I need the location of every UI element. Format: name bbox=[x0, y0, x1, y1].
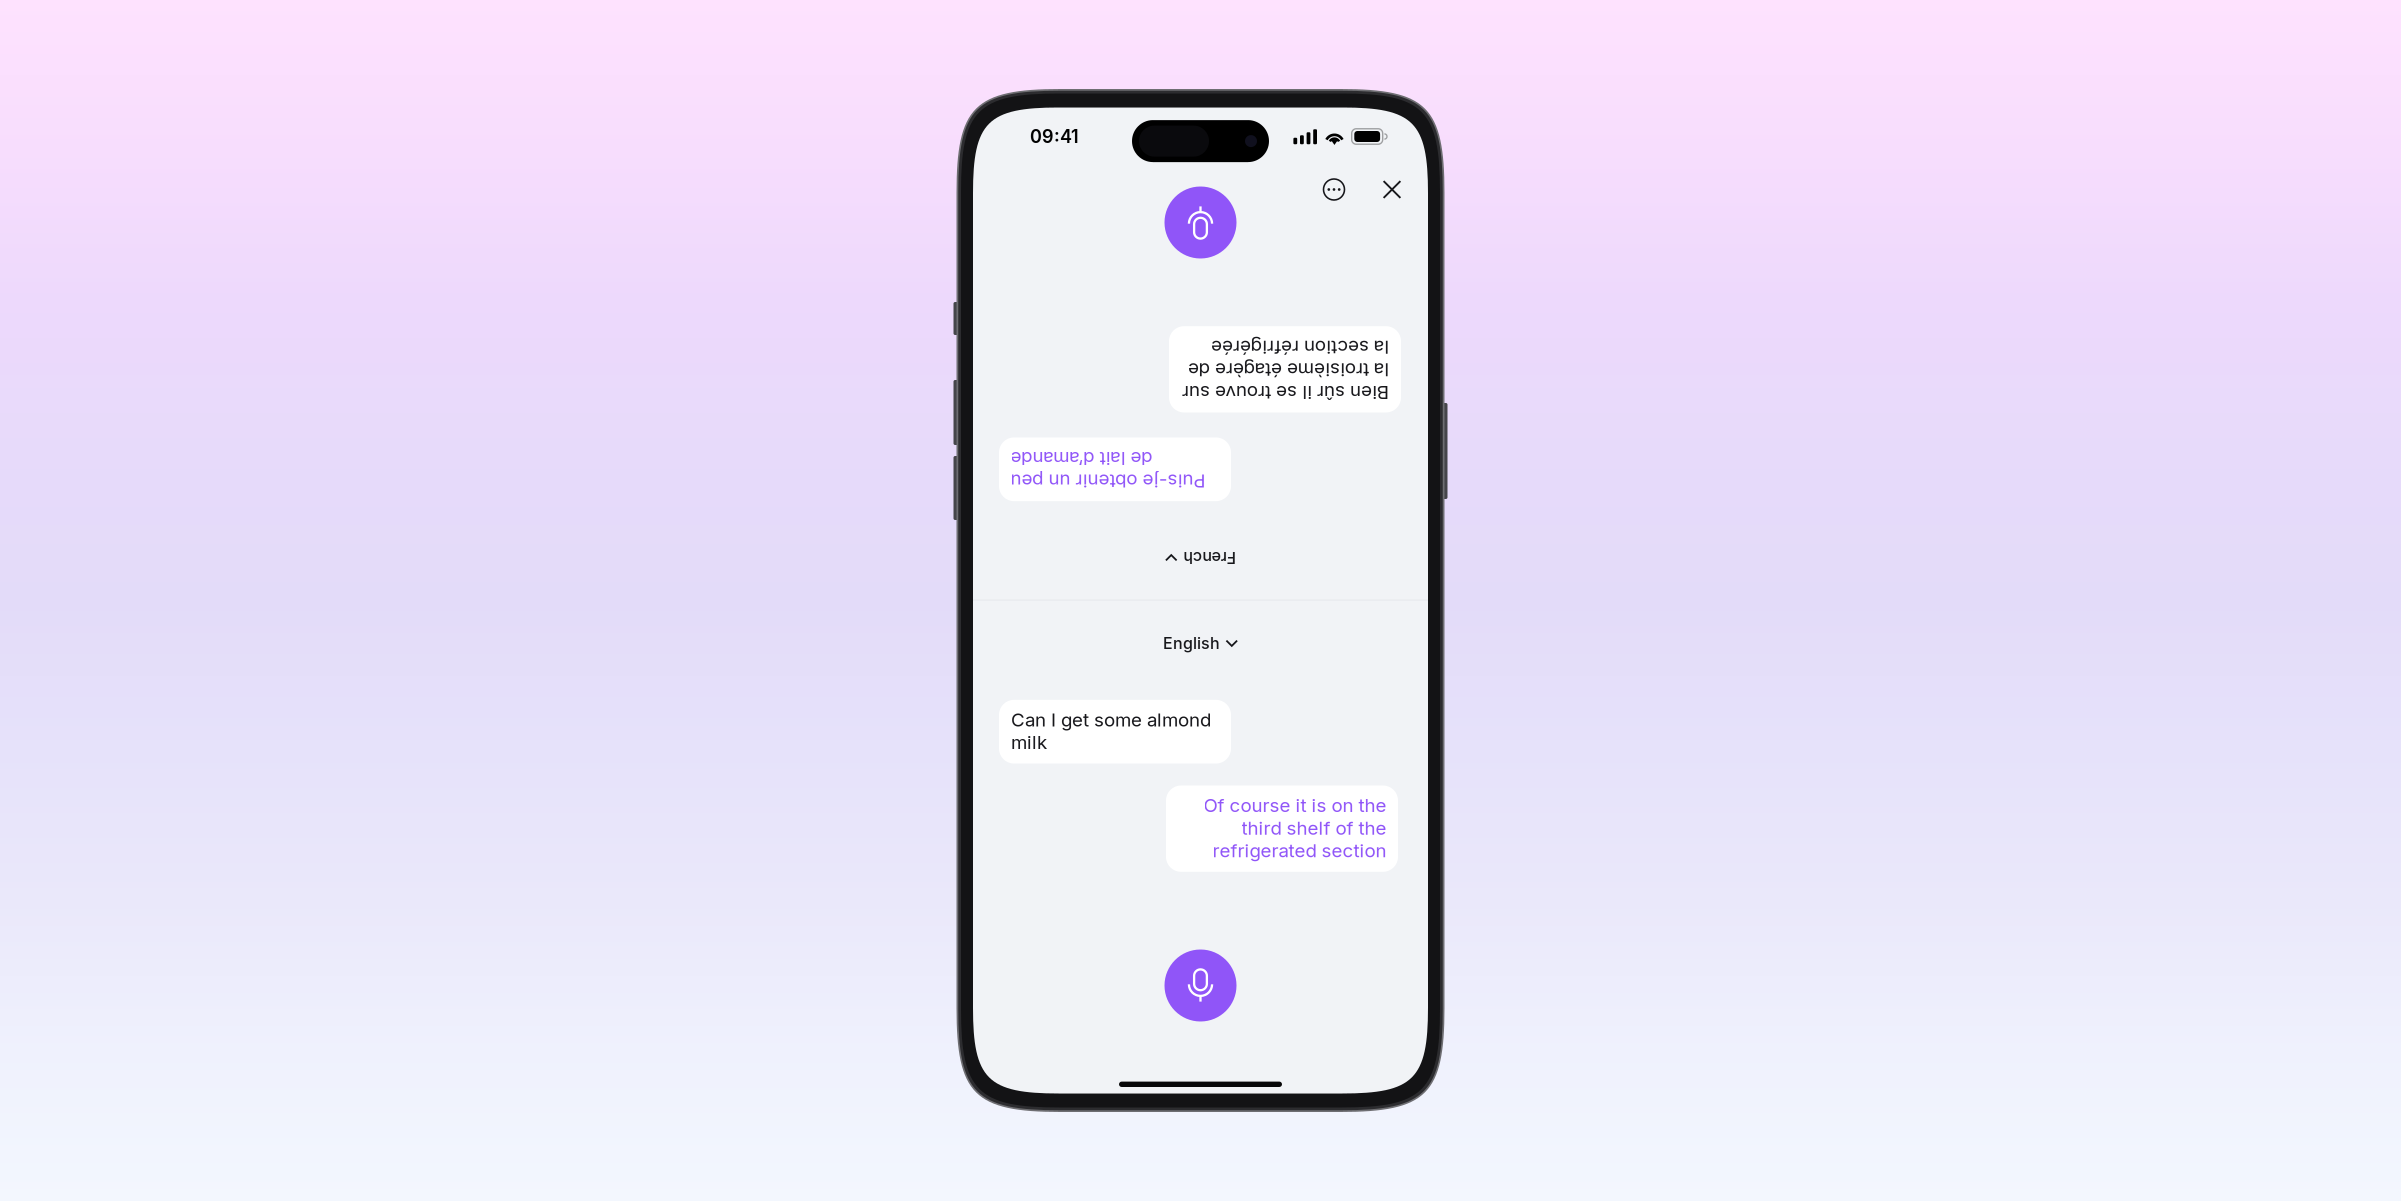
button[interactable]: Close bbox=[1370, 167, 1414, 211]
button[interactable]: More options bbox=[1312, 167, 1356, 211]
staticText: French bbox=[1165, 139, 1218, 159]
button[interactable]: English bbox=[1151, 628, 1250, 658]
staticText: Puis-je obtenir un peu de lait d’amande bbox=[1195, 214, 1390, 260]
staticText: Can I get some almond milk bbox=[1011, 708, 1211, 754]
staticText: Of course it is on the third shelf of th… bbox=[1203, 794, 1386, 862]
staticText: 09:41 bbox=[1030, 126, 1079, 147]
button[interactable]: Record French bbox=[1164, 448, 1236, 520]
staticText: English bbox=[1163, 633, 1220, 653]
button[interactable]: French bbox=[1153, 134, 1248, 164]
staticText: Bien sûr il se trouve sur la troisième é… bbox=[1012, 303, 1219, 371]
button[interactable]: Record English bbox=[1164, 949, 1236, 1021]
